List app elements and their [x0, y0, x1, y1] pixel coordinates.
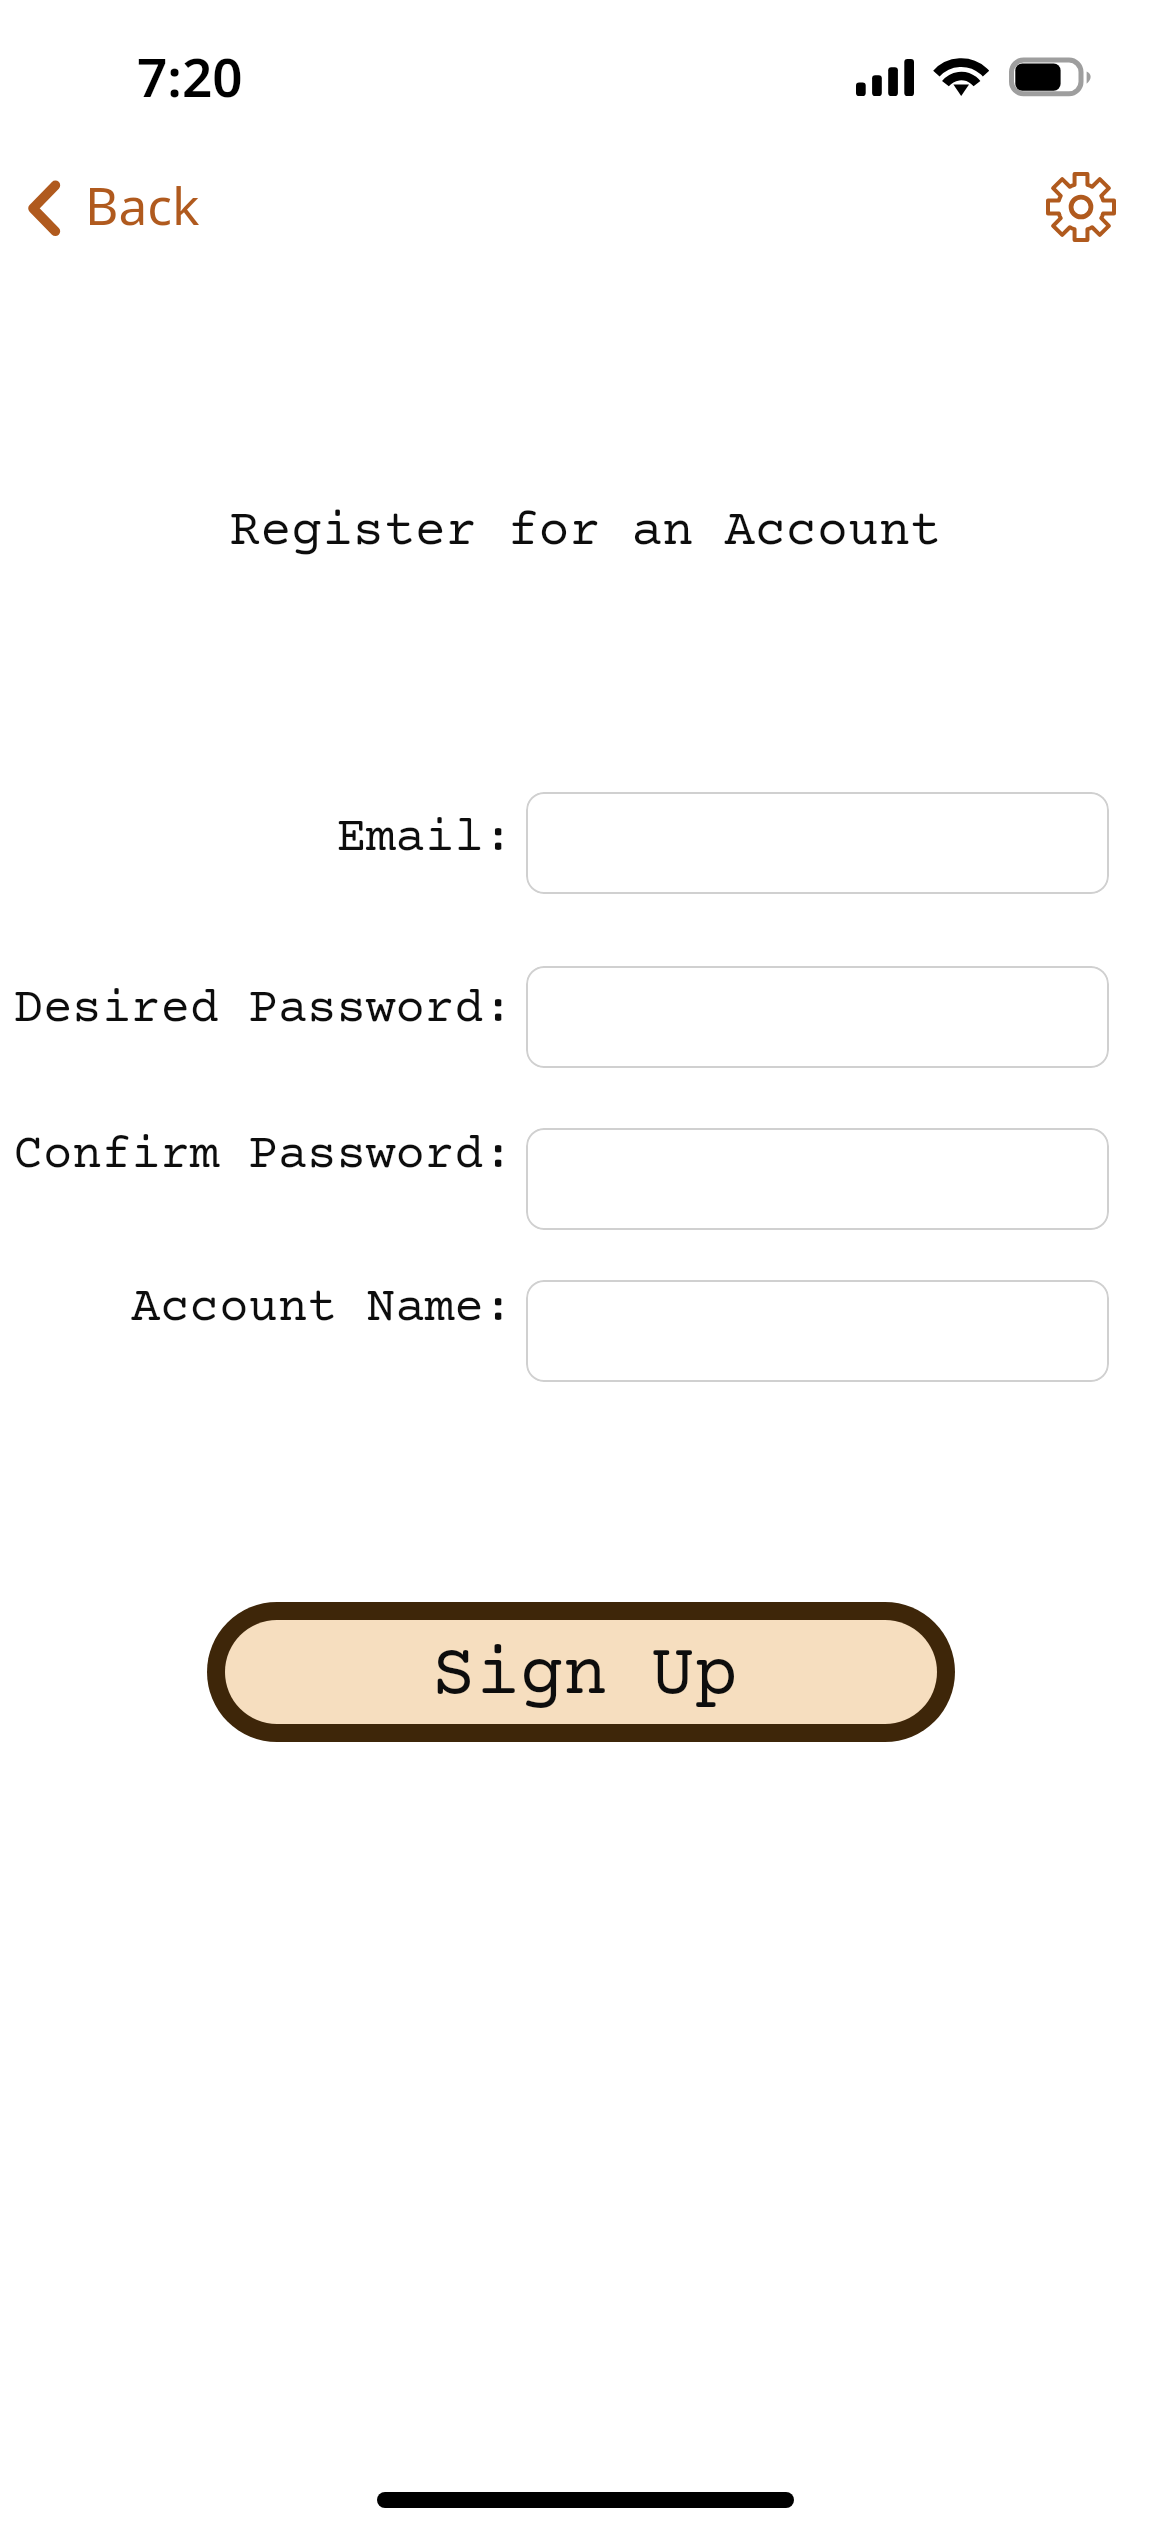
button[interactable]: [526, 966, 1109, 1068]
staticText: Desired Password:: [0, 983, 513, 1038]
button[interactable]: Back: [20, 170, 200, 246]
button[interactable]: Settings: [1038, 164, 1124, 250]
staticText: 7:20: [137, 40, 243, 112]
staticText: Email:: [0, 812, 513, 867]
staticText: Register for an Account: [0, 504, 1170, 562]
button[interactable]: [526, 1280, 1109, 1382]
staticText: Account Name:: [0, 1282, 513, 1337]
staticText: Back: [85, 170, 200, 240]
staticText: Confirm Password:: [0, 1129, 513, 1184]
button[interactable]: [526, 1128, 1109, 1230]
button[interactable]: Sign Up: [225, 1620, 937, 1724]
button[interactable]: [526, 792, 1109, 894]
staticText: Sign Up: [432, 1636, 739, 1718]
